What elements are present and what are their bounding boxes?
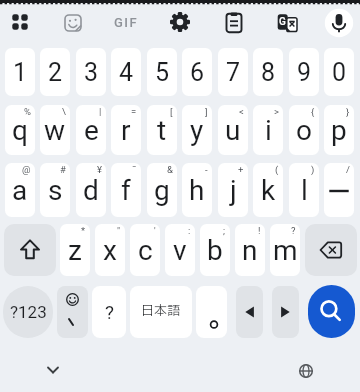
- button[interactable]: r: [111, 105, 141, 155]
- button[interactable]: [291, 356, 321, 386]
- staticText: ': [154, 225, 156, 236]
- button[interactable]: c: [130, 224, 160, 276]
- staticText: ): [311, 164, 315, 175]
- staticText: 6: [190, 58, 205, 87]
- button[interactable]: [271, 5, 307, 41]
- staticText: 4: [119, 58, 134, 87]
- button[interactable]: n: [235, 224, 265, 276]
- staticText: u: [225, 114, 241, 147]
- button[interactable]: f: [111, 163, 141, 217]
- button[interactable]: [196, 286, 227, 338]
- staticText: i: [265, 114, 272, 147]
- button[interactable]: [2, 4, 38, 40]
- button[interactable]: ?: [92, 286, 126, 338]
- button[interactable]: 3: [76, 48, 106, 96]
- staticText: !: [258, 225, 261, 236]
- staticText: @: [22, 164, 31, 175]
- button[interactable]: [162, 4, 198, 40]
- staticText: #: [60, 164, 66, 175]
- staticText: ?: [291, 225, 296, 236]
- staticText: =: [131, 106, 137, 117]
- staticText: ;: [223, 225, 226, 236]
- staticText: 日本語: [141, 301, 181, 320]
- button[interactable]: 1: [5, 48, 35, 96]
- button[interactable]: [272, 286, 299, 338]
- staticText: e: [84, 114, 99, 147]
- button[interactable]: a: [5, 163, 35, 217]
- button[interactable]: l: [289, 163, 319, 217]
- staticText: f: [121, 174, 131, 207]
- button[interactable]: o: [289, 105, 319, 155]
- button[interactable]: [236, 286, 263, 338]
- staticText: s: [48, 174, 63, 207]
- button[interactable]: 5: [147, 48, 177, 96]
- staticText: d: [83, 174, 99, 207]
- staticText: 5: [155, 58, 170, 87]
- button[interactable]: u: [218, 105, 248, 155]
- button[interactable]: s: [40, 163, 70, 217]
- staticText: n: [242, 234, 258, 267]
- button[interactable]: [308, 285, 355, 338]
- button[interactable]: h: [182, 163, 212, 217]
- button[interactable]: e: [76, 105, 106, 155]
- staticText: }: [346, 106, 350, 117]
- button[interactable]: [4, 224, 56, 276]
- button[interactable]: [305, 224, 357, 276]
- staticText: (: [275, 164, 279, 175]
- staticText: %: [24, 106, 31, 117]
- button[interactable]: p: [324, 105, 354, 155]
- button[interactable]: 6: [182, 48, 212, 96]
- staticText: g: [154, 174, 170, 207]
- staticText: ?: [105, 301, 114, 323]
- button[interactable]: g: [147, 163, 177, 217]
- button[interactable]: [216, 5, 252, 41]
- button[interactable]: [57, 286, 88, 338]
- staticText: ?123: [10, 302, 47, 322]
- staticText: <: [239, 106, 244, 117]
- staticText: [: [170, 106, 173, 117]
- staticText: :: [188, 225, 191, 236]
- staticText: 3: [84, 58, 99, 87]
- staticText: GIF: [114, 15, 139, 30]
- button[interactable]: k: [253, 163, 283, 217]
- button[interactable]: y: [182, 105, 212, 155]
- button[interactable]: v: [165, 224, 195, 276]
- button[interactable]: 日本語: [130, 286, 192, 338]
- button[interactable]: z: [60, 224, 90, 276]
- button[interactable]: ?123: [3, 286, 53, 338]
- staticText: >: [274, 106, 279, 117]
- button[interactable]: 7: [218, 48, 248, 96]
- button[interactable]: d: [76, 163, 106, 217]
- button[interactable]: x: [95, 224, 125, 276]
- button[interactable]: q: [5, 105, 35, 155]
- staticText: ": [117, 225, 121, 236]
- staticText: h: [189, 174, 205, 207]
- staticText: v: [173, 234, 187, 267]
- staticText: c: [138, 234, 153, 267]
- button[interactable]: GIF: [108, 10, 144, 34]
- button[interactable]: 0: [324, 48, 354, 96]
- button[interactable]: i: [253, 105, 283, 155]
- button[interactable]: [38, 355, 68, 385]
- button[interactable]: 2: [40, 48, 70, 96]
- staticText: ¥: [97, 164, 102, 175]
- staticText: 7: [226, 58, 241, 87]
- staticText: 9: [297, 58, 312, 87]
- staticText: r: [121, 114, 131, 147]
- staticText: /: [346, 164, 350, 175]
- button[interactable]: w: [40, 105, 70, 155]
- button[interactable]: [321, 5, 357, 41]
- button[interactable]: 9: [289, 48, 319, 96]
- button[interactable]: /: [324, 163, 354, 217]
- staticText: &: [167, 164, 173, 175]
- button[interactable]: j: [218, 163, 248, 217]
- button[interactable]: b: [200, 224, 230, 276]
- button[interactable]: [55, 5, 91, 41]
- staticText: \: [62, 106, 66, 117]
- button[interactable]: 8: [253, 48, 283, 96]
- button[interactable]: m: [270, 224, 300, 276]
- button[interactable]: 4: [111, 48, 141, 96]
- button[interactable]: t: [147, 105, 177, 155]
- staticText: {: [311, 106, 315, 117]
- staticText: q: [12, 114, 28, 147]
